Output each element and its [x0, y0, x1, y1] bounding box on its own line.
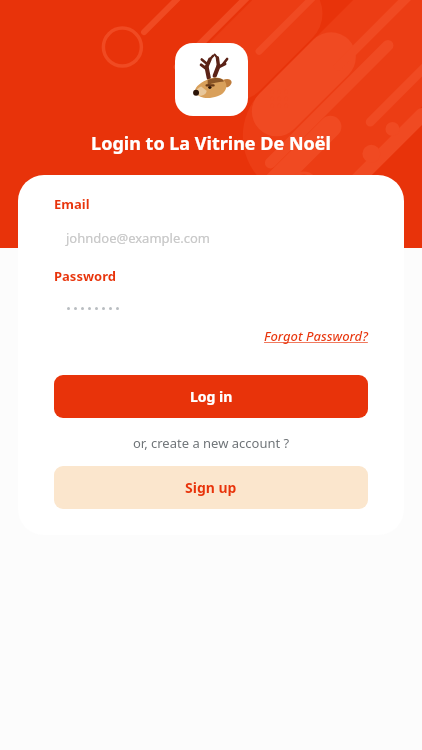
button[interactable]: Sign up — [54, 466, 368, 509]
staticText: Password — [54, 267, 116, 285]
button[interactable]: Log in — [54, 375, 368, 418]
staticText: Log in — [190, 387, 233, 406]
staticText: Sign up — [185, 478, 237, 497]
button[interactable] — [54, 297, 368, 319]
button[interactable]: App logo — [175, 43, 248, 116]
staticText: Forgot Password? — [264, 327, 368, 345]
staticText: johndoe@example.com — [66, 229, 210, 247]
staticText: or, create a new account ? — [133, 434, 290, 452]
button[interactable]: Forgot Password? — [264, 327, 368, 345]
staticText: Email — [54, 195, 90, 213]
staticText: Login to La Vitrine De Noël — [91, 131, 331, 156]
button[interactable]: johndoe@example.com — [54, 227, 368, 249]
